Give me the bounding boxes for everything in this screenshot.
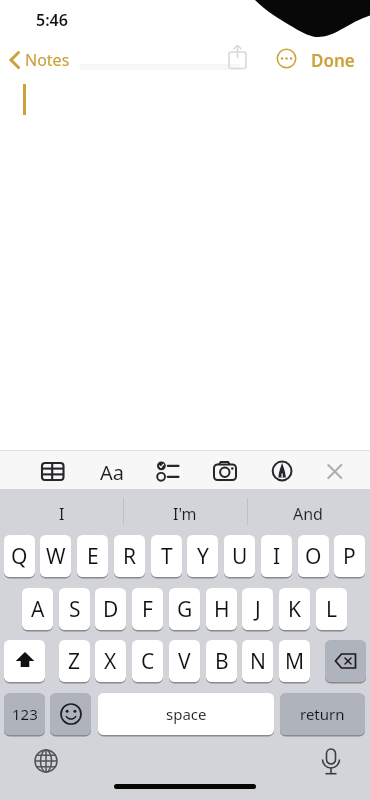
staticText: Z: [68, 647, 81, 676]
staticText: W: [46, 542, 66, 571]
button[interactable]: V: [169, 640, 200, 682]
button[interactable]: A: [22, 588, 53, 630]
staticText: space: [166, 704, 207, 724]
button[interactable]: [275, 47, 298, 70]
staticText: B: [215, 647, 229, 676]
staticText: 123: [12, 704, 38, 724]
staticText: Done: [311, 49, 355, 72]
staticText: Y: [197, 542, 209, 571]
button[interactable]: [210, 458, 240, 486]
button[interactable]: [322, 459, 348, 485]
button[interactable]: N: [242, 640, 273, 682]
staticText: Aa: [100, 459, 124, 486]
staticText: 5:46: [36, 9, 68, 31]
button[interactable]: D: [95, 588, 126, 630]
staticText: return: [300, 704, 345, 724]
button[interactable]: M: [279, 640, 310, 682]
button[interactable]: I: [261, 535, 292, 577]
staticText: X: [104, 647, 117, 676]
button[interactable]: I'm: [143, 500, 227, 527]
staticText: O: [305, 542, 322, 571]
staticText: D: [103, 595, 119, 624]
staticText: E: [87, 542, 99, 571]
button[interactable]: [33, 748, 59, 774]
staticText: Q: [11, 542, 28, 571]
button[interactable]: K: [279, 588, 310, 630]
button[interactable]: U: [224, 535, 255, 577]
button[interactable]: G: [169, 588, 200, 630]
staticText: A: [31, 595, 45, 624]
button[interactable]: L: [316, 588, 347, 630]
staticText: L: [326, 595, 338, 624]
staticText: I'm: [173, 503, 197, 525]
button[interactable]: H: [206, 588, 237, 630]
staticText: U: [232, 542, 248, 571]
button[interactable]: And: [266, 500, 350, 527]
button[interactable]: [4, 46, 76, 74]
button[interactable]: W: [40, 535, 71, 577]
button[interactable]: [226, 44, 250, 72]
staticText: P: [343, 542, 356, 571]
button[interactable]: Z: [59, 640, 90, 682]
button[interactable]: R: [114, 535, 145, 577]
staticText: And: [293, 503, 323, 525]
button[interactable]: return: [280, 693, 365, 735]
button[interactable]: Y: [187, 535, 218, 577]
button[interactable]: E: [77, 535, 108, 577]
staticText: J: [255, 595, 261, 624]
staticText: R: [123, 542, 137, 571]
staticText: H: [214, 595, 230, 624]
button[interactable]: [268, 457, 298, 485]
staticText: M: [285, 647, 305, 676]
staticText: K: [288, 595, 301, 624]
staticText: C: [141, 647, 155, 676]
staticText: F: [142, 595, 153, 624]
button[interactable]: [318, 746, 344, 778]
staticText: S: [69, 595, 81, 624]
button[interactable]: T: [151, 535, 182, 577]
staticText: V: [178, 647, 191, 676]
button[interactable]: B: [206, 640, 237, 682]
button[interactable]: [4, 640, 45, 682]
button[interactable]: J: [242, 588, 273, 630]
button[interactable]: Aa: [96, 458, 128, 486]
button[interactable]: Done: [311, 48, 355, 72]
button[interactable]: S: [59, 588, 90, 630]
button[interactable]: space: [98, 693, 274, 735]
staticText: I: [273, 542, 281, 571]
button[interactable]: [38, 458, 68, 486]
button[interactable]: Q: [4, 535, 35, 577]
button[interactable]: C: [132, 640, 163, 682]
button[interactable]: P: [334, 535, 365, 577]
button[interactable]: F: [132, 588, 163, 630]
button[interactable]: [325, 640, 366, 682]
staticText: Notes: [25, 49, 70, 71]
staticText: T: [161, 542, 173, 571]
staticText: N: [250, 647, 266, 676]
button[interactable]: [153, 458, 183, 486]
staticText: I: [59, 503, 65, 525]
button[interactable]: 123: [4, 693, 45, 735]
button[interactable]: [50, 693, 91, 735]
button[interactable]: O: [298, 535, 329, 577]
staticText: G: [177, 595, 193, 624]
button[interactable]: X: [95, 640, 126, 682]
button[interactable]: I: [20, 500, 104, 527]
